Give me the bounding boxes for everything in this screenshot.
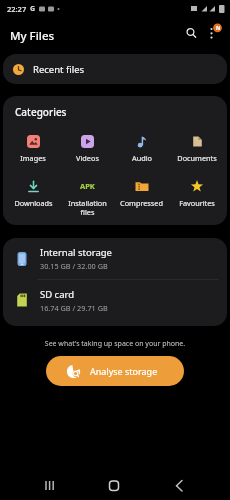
button[interactable]: Favourites [169, 179, 224, 208]
staticText: G [30, 4, 36, 14]
staticText: APK [80, 181, 95, 191]
staticText: Audio [132, 153, 152, 163]
button[interactable] [181, 24, 199, 42]
button[interactable] [165, 471, 193, 499]
staticText: See what's taking up space on your phone… [0, 339, 230, 349]
button[interactable]: APK [60, 179, 114, 218]
staticText: Analyse storage [90, 365, 158, 377]
staticText: Recent files [33, 63, 85, 76]
staticText: SD card [40, 288, 75, 301]
button[interactable]: Videos [60, 134, 114, 163]
button[interactable]: Downloads [6, 179, 60, 208]
staticText: Categories [15, 105, 67, 119]
button[interactable]: Images [6, 134, 60, 163]
staticText: 30.15 GB / 32.00 GB [40, 261, 108, 271]
button[interactable]: Documents [169, 134, 224, 163]
button[interactable] [36, 471, 64, 499]
staticText: Compressed [120, 198, 163, 208]
button[interactable]: Audio [114, 134, 169, 163]
staticText: Internal storage [40, 246, 112, 259]
button[interactable] [100, 471, 128, 499]
staticText: N [216, 24, 221, 31]
staticText: Downloads [14, 198, 53, 208]
button[interactable]: Internal storage [3, 238, 227, 279]
staticText: Documents [177, 153, 217, 163]
button[interactable]: Compressed [114, 179, 169, 208]
staticText: 22:27 [7, 4, 27, 14]
staticText: Favourites [179, 198, 215, 208]
staticText: Installation files [68, 198, 107, 218]
button[interactable]: Recent files [3, 54, 227, 84]
staticText: Videos [76, 153, 99, 163]
button[interactable]: Analyse storage [46, 356, 184, 386]
staticText: 16.74 GB / 29.71 GB [40, 303, 108, 313]
staticText: Images [20, 153, 46, 163]
button[interactable]: SD card [3, 280, 227, 320]
button[interactable]: N [204, 18, 224, 48]
staticText: My Files [10, 28, 55, 44]
